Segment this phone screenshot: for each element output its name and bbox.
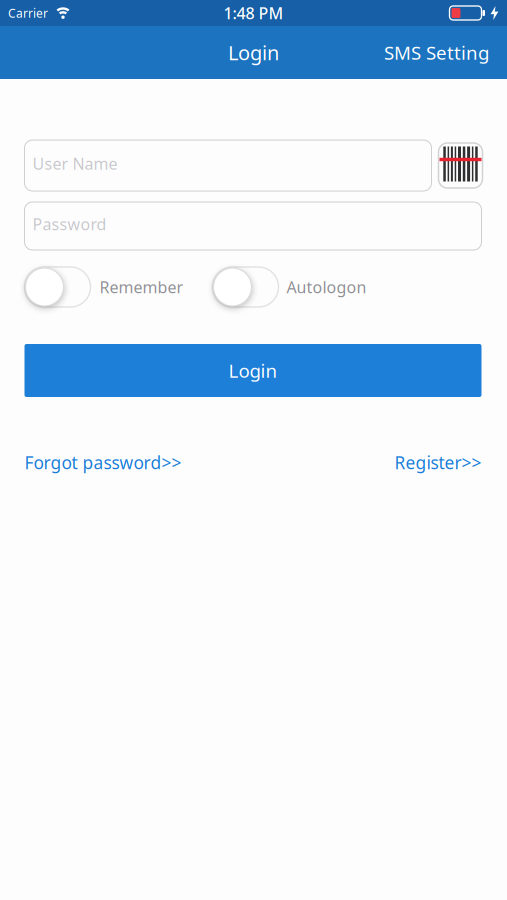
staticText: SMS Setting	[384, 40, 489, 65]
button[interactable]: User Name	[24, 140, 431, 191]
button[interactable]: Autologon	[212, 267, 278, 307]
button[interactable]: SMS Setting	[384, 40, 489, 65]
staticText: 1:48 PM	[223, 2, 283, 24]
staticText: Autologon	[286, 276, 366, 298]
button[interactable]: Forgot password>>	[24, 451, 181, 474]
staticText: User Name	[32, 153, 117, 174]
staticText: Remember	[99, 276, 183, 298]
staticText: Carrier	[8, 5, 48, 21]
staticText: Login	[228, 39, 279, 66]
button[interactable]: Register>>	[394, 451, 481, 474]
button[interactable]: Scan barcode	[438, 143, 482, 188]
button[interactable]: Login	[24, 344, 481, 397]
staticText: Forgot password>>	[24, 451, 181, 474]
staticText: Register>>	[394, 451, 481, 474]
button[interactable]: Remember	[24, 267, 90, 307]
staticText: Login	[228, 358, 277, 383]
staticText: Password	[32, 213, 106, 235]
button[interactable]: Password	[24, 202, 481, 250]
